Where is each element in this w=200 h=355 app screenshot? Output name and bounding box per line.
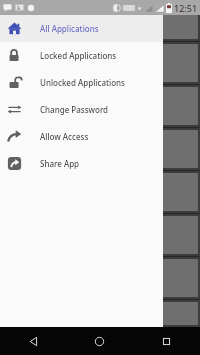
staticText: Share App — [40, 158, 80, 169]
button[interactable]: Toggle lock — [0, 259, 200, 297]
button[interactable]: Toggle lock — [10, 102, 30, 111]
button[interactable]: All Applications — [0, 15, 163, 42]
button[interactable]: Back — [0, 327, 66, 355]
button[interactable]: Toggle lock — [0, 15, 200, 39]
staticText: Allow Access — [40, 131, 89, 142]
button[interactable]: Toggle lock — [0, 44, 200, 82]
staticText: All Applications — [40, 23, 99, 34]
staticText: Change Password — [40, 104, 109, 115]
button[interactable]: Change Password — [0, 96, 163, 123]
button[interactable]: Toggle lock — [0, 87, 200, 125]
staticText: 12:51 — [174, 2, 198, 14]
staticText: Unlocked Applications — [40, 77, 125, 88]
button[interactable]: Toggle lock — [0, 130, 200, 168]
button[interactable]: Allow Access — [0, 123, 163, 150]
button[interactable]: Share App — [0, 150, 163, 177]
button[interactable]: Toggle lock — [0, 302, 200, 325]
button[interactable]: Home — [66, 327, 133, 355]
button[interactable]: Recent apps — [133, 327, 200, 355]
button[interactable]: Toggle lock — [10, 23, 30, 32]
button[interactable]: Toggle lock — [10, 59, 30, 68]
button[interactable]: Locked Applications — [0, 42, 163, 69]
button[interactable]: Unlocked Applications — [0, 69, 163, 96]
button[interactable]: Toggle lock — [0, 216, 200, 254]
button[interactable]: Toggle lock — [0, 173, 200, 211]
staticText: Locked Applications — [40, 50, 117, 61]
